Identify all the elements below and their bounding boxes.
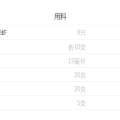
staticText: 各10克 [68,43,86,51]
staticText: 15毫升 [68,57,86,65]
staticText: 20克 [74,71,86,79]
button[interactable]: 番茄酱 [0,82,120,95]
staticText: 5克 [77,99,86,107]
button[interactable]: 葱姜 [0,40,120,53]
staticText: 20克 [74,85,86,93]
staticText: 用料 [54,11,66,21]
button[interactable]: 料酒 [0,54,120,67]
button[interactable]: 基围虾 [0,24,120,39]
button[interactable]: 白糖 [0,68,120,81]
staticText: 基围虾 [0,28,7,36]
staticText: 8只 [77,28,86,36]
button[interactable]: 食盐 [0,96,120,109]
